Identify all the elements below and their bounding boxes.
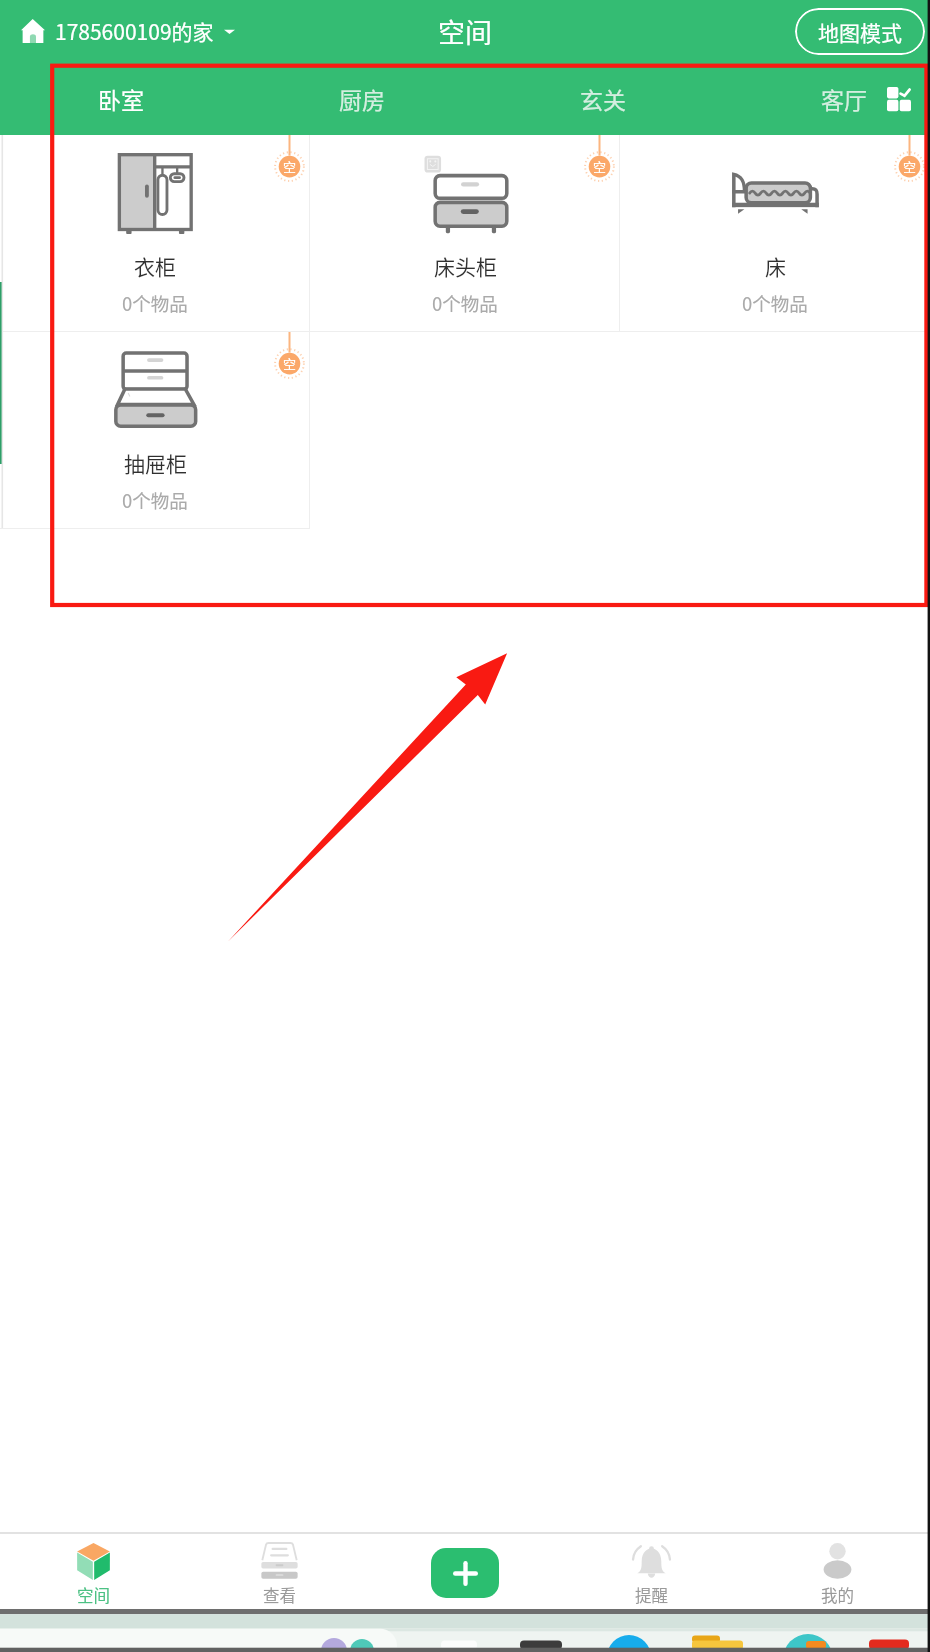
staticText: 空	[593, 157, 607, 176]
staticText: 1785600109的家	[55, 16, 214, 46]
button[interactable]: 提醒	[558, 1532, 744, 1609]
staticText: 厨房	[339, 82, 385, 115]
staticText: 空	[903, 157, 917, 176]
staticText: 0个物品	[122, 487, 188, 514]
button[interactable]: Manage rooms	[866, 62, 930, 135]
button[interactable]: 地图模式	[795, 8, 925, 55]
staticText: 卧室	[98, 82, 144, 115]
button[interactable]: 1785600109的家	[21, 16, 235, 46]
staticText: 0个物品	[122, 290, 188, 317]
staticText: 空间	[77, 1583, 110, 1607]
staticText: 地图模式	[818, 17, 902, 47]
staticText: 玄关	[580, 82, 626, 115]
button[interactable]: 玄关	[482, 62, 723, 135]
staticText: 衣柜	[134, 251, 176, 281]
button[interactable]: 我的	[744, 1532, 930, 1609]
button[interactable]: Add item	[431, 1548, 499, 1598]
staticText: 客厅	[821, 82, 867, 115]
staticText: 0个物品	[742, 290, 808, 317]
button[interactable]: 查看	[186, 1532, 372, 1609]
button[interactable]: 抽屉柜	[0, 332, 310, 528]
staticText: 空间	[438, 12, 492, 51]
staticText: 我的	[821, 1583, 854, 1607]
staticText: 0个物品	[432, 290, 498, 317]
button[interactable]: 厨房	[241, 62, 482, 135]
staticText: 床	[765, 251, 786, 281]
staticText: 空	[283, 157, 297, 176]
staticText: 查看	[263, 1583, 296, 1607]
button[interactable]: 卧室	[0, 62, 241, 135]
button[interactable]: 衣柜	[0, 135, 310, 331]
staticText: 抽屉柜	[124, 448, 187, 478]
staticText: 空	[283, 354, 297, 373]
button[interactable]: 床	[620, 135, 930, 331]
staticText: 床头柜	[434, 251, 497, 281]
staticText: 提醒	[635, 1583, 668, 1607]
button[interactable]: 客厅	[723, 62, 930, 135]
button[interactable]: 床头柜	[310, 135, 620, 331]
button[interactable]: 空间	[0, 1532, 186, 1609]
